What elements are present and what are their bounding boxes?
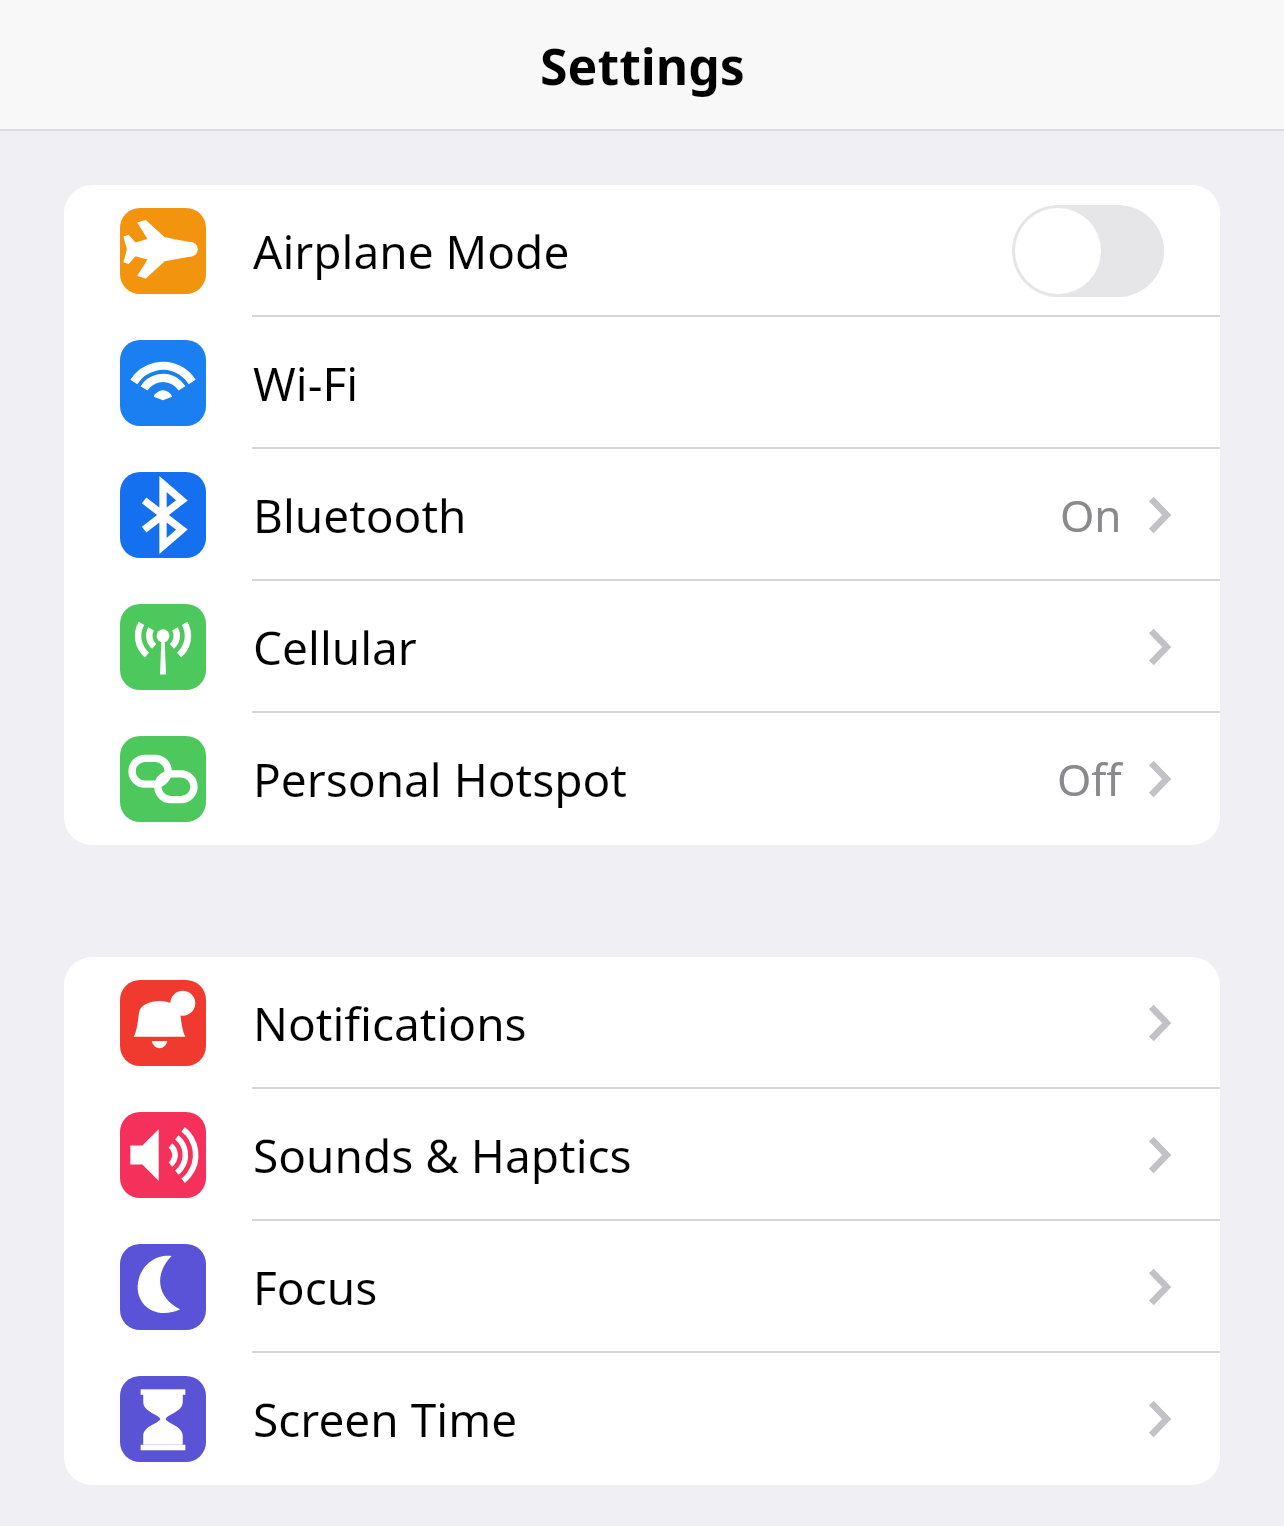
button[interactable]: Notifications xyxy=(64,957,1220,1089)
button[interactable]: Sounds & Haptics xyxy=(64,1089,1220,1221)
staticText: Cellular xyxy=(253,616,417,679)
staticText: On xyxy=(1060,485,1122,545)
staticText: Airplane Mode xyxy=(253,220,570,283)
staticText: Notifications xyxy=(253,992,527,1055)
staticText: Focus xyxy=(253,1256,378,1319)
button[interactable]: Bluetooth xyxy=(64,449,1220,581)
staticText: Sounds & Haptics xyxy=(253,1124,632,1187)
button[interactable]: Personal Hotspot xyxy=(64,713,1220,845)
button[interactable]: Airplane Mode xyxy=(64,185,1220,317)
staticText: Bluetooth xyxy=(253,484,467,547)
button[interactable]: Focus xyxy=(64,1221,1220,1353)
button[interactable]: Screen Time xyxy=(64,1353,1220,1485)
button[interactable]: Wi-Fi xyxy=(64,317,1220,449)
button[interactable]: Cellular xyxy=(64,581,1220,713)
staticText: Screen Time xyxy=(253,1388,518,1451)
button[interactable]: Airplane Mode toggle xyxy=(1012,205,1164,297)
staticText: Wi-Fi xyxy=(253,352,359,415)
staticText: Personal Hotspot xyxy=(253,748,627,811)
staticText: Settings xyxy=(540,32,745,100)
staticText: Off xyxy=(1057,749,1122,809)
